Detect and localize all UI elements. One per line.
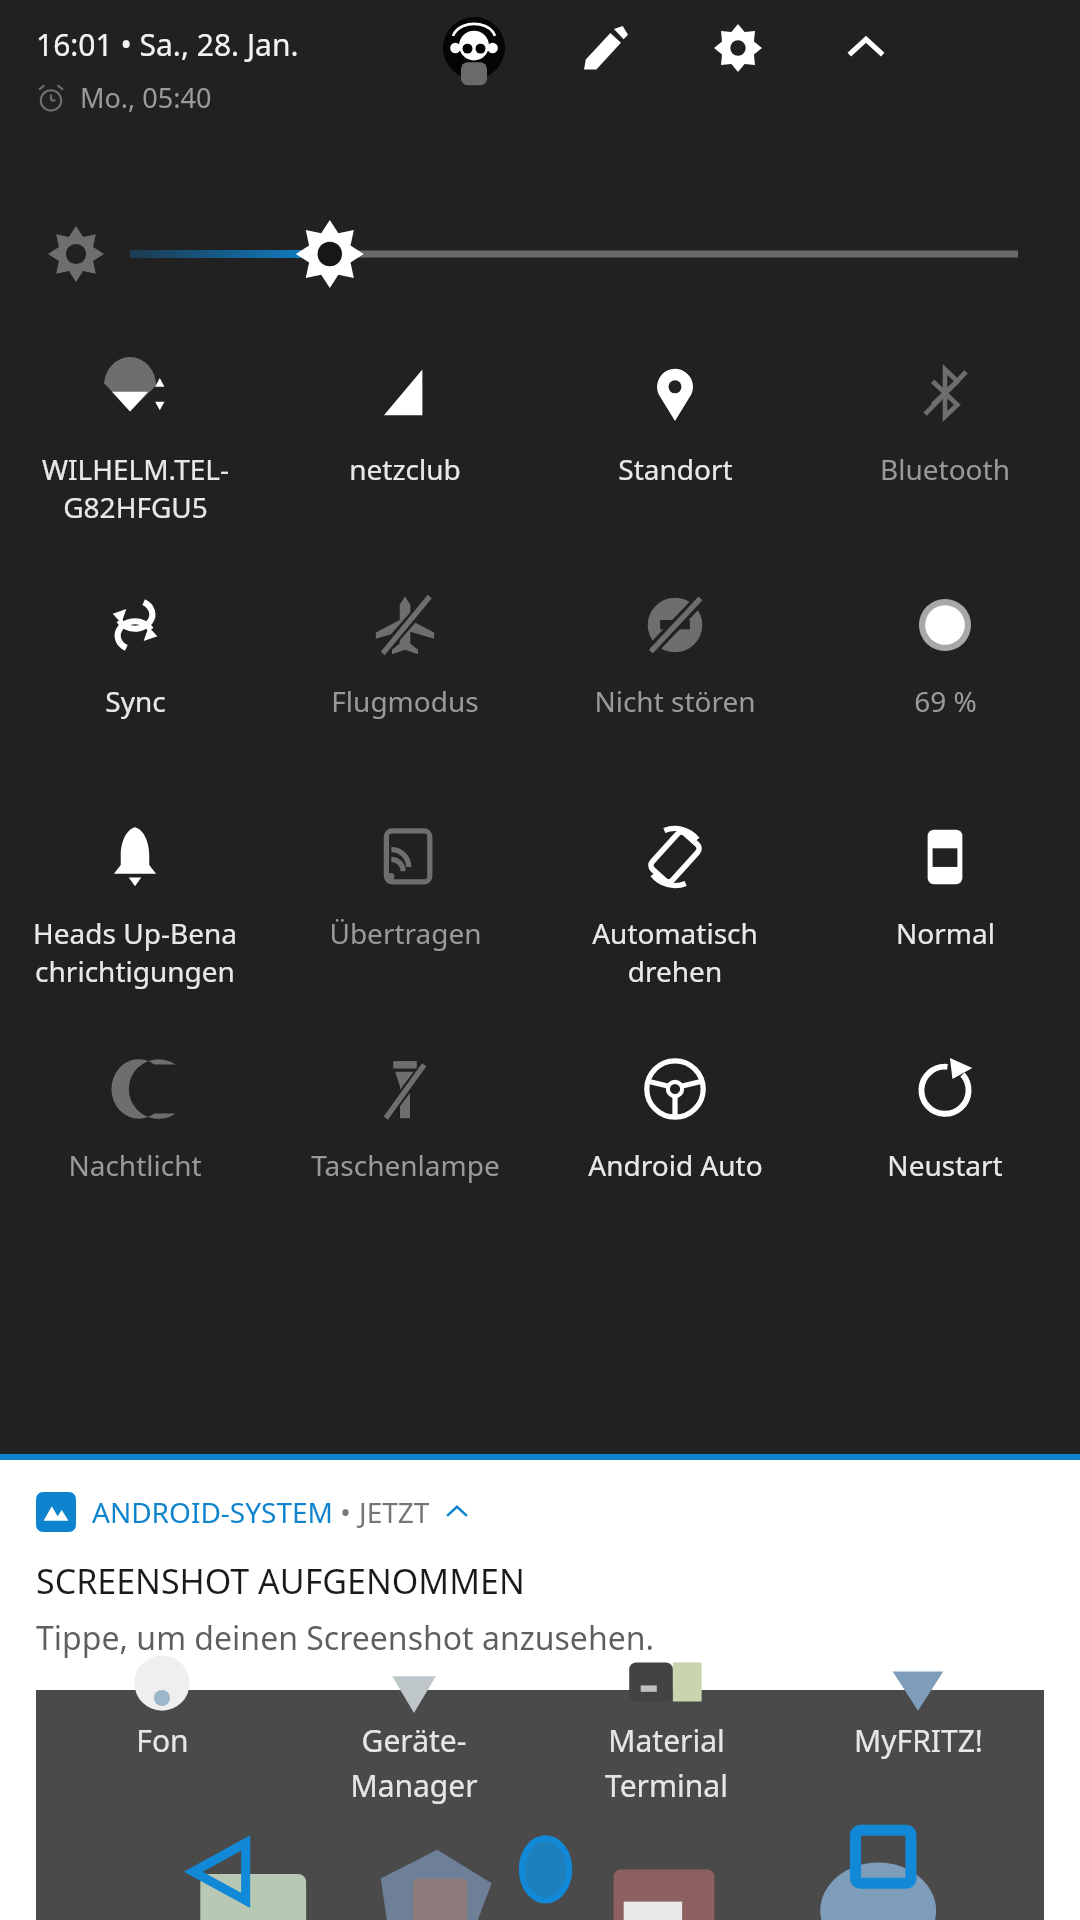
staticText: Fon: [136, 1720, 189, 1761]
button[interactable]: Bluetooth: [810, 332, 1080, 564]
button[interactable]: Übertragen: [270, 796, 540, 1028]
button[interactable]: Heads Up-Bena chrichtigungen: [0, 796, 270, 1028]
staticText: Android Auto: [588, 1146, 763, 1184]
button[interactable]: Bearbeiten: [570, 12, 642, 84]
staticText: netzclub: [349, 450, 461, 488]
staticText: Flugmodus: [331, 682, 479, 720]
staticText: ANDROID-SYSTEM: [92, 1493, 333, 1531]
staticText: MyFRITZ!: [854, 1720, 983, 1761]
staticText: Nachtlicht: [68, 1146, 202, 1184]
staticText: SCREENSHOT AUFGENOMMEN: [36, 1558, 525, 1604]
button[interactable]: Screenshot-Vorschau: [36, 1690, 1044, 1920]
staticText: Standort: [618, 450, 733, 488]
staticText: Tippe, um deinen Screenshot anzusehen.: [36, 1616, 655, 1660]
button[interactable]: ANDROID-SYSTEM: [0, 1460, 1080, 1920]
button[interactable]: Neustart: [810, 1028, 1080, 1260]
button[interactable]: Automatisch drehen: [540, 796, 810, 1028]
button[interactable]: Nachtlicht: [0, 1028, 270, 1260]
staticText: 69 %: [914, 682, 977, 720]
button[interactable]: Flugmodus: [270, 564, 540, 796]
staticText: Nicht stören: [594, 682, 756, 720]
button[interactable]: netzclub: [270, 332, 540, 564]
button[interactable]: Normal: [810, 796, 1080, 1028]
button[interactable]: Nutzerprofil: [438, 12, 510, 84]
staticText: Mo., 05:40: [80, 79, 212, 116]
staticText: 16:01 • Sa., 28. Jan.: [36, 24, 299, 65]
staticText: Normal: [896, 914, 995, 952]
button[interactable]: Standort: [540, 332, 810, 564]
button[interactable]: 69 %: [810, 564, 1080, 796]
button[interactable]: Sync: [0, 564, 270, 796]
staticText: •: [333, 1493, 359, 1531]
button[interactable]: Taschenlampe: [270, 1028, 540, 1260]
staticText: Bluetooth: [880, 450, 1010, 488]
staticText: Übertragen: [329, 914, 482, 952]
button[interactable]: Einstellungen: [702, 12, 774, 84]
staticText: Material Terminal: [605, 1720, 728, 1805]
staticText: Sync: [105, 682, 166, 720]
staticText: JETZT: [359, 1493, 430, 1531]
staticText: Geräte- Manager: [350, 1720, 478, 1805]
button[interactable]: Einklappen: [830, 12, 902, 84]
staticText: WILHELM.TEL- G82HFGU5: [42, 450, 229, 526]
staticText: Neustart: [887, 1146, 1003, 1184]
button[interactable]: Nicht stören: [540, 564, 810, 796]
staticText: Taschenlampe: [311, 1146, 500, 1184]
button[interactable]: WILHELM.TEL- G82HFGU5: [0, 332, 270, 564]
staticText: Automatisch drehen: [592, 914, 758, 990]
button[interactable]: Android Auto: [540, 1028, 810, 1260]
button[interactable]: Helligkeit: [0, 206, 1080, 302]
staticText: Heads Up-Bena chrichtigungen: [33, 914, 237, 990]
